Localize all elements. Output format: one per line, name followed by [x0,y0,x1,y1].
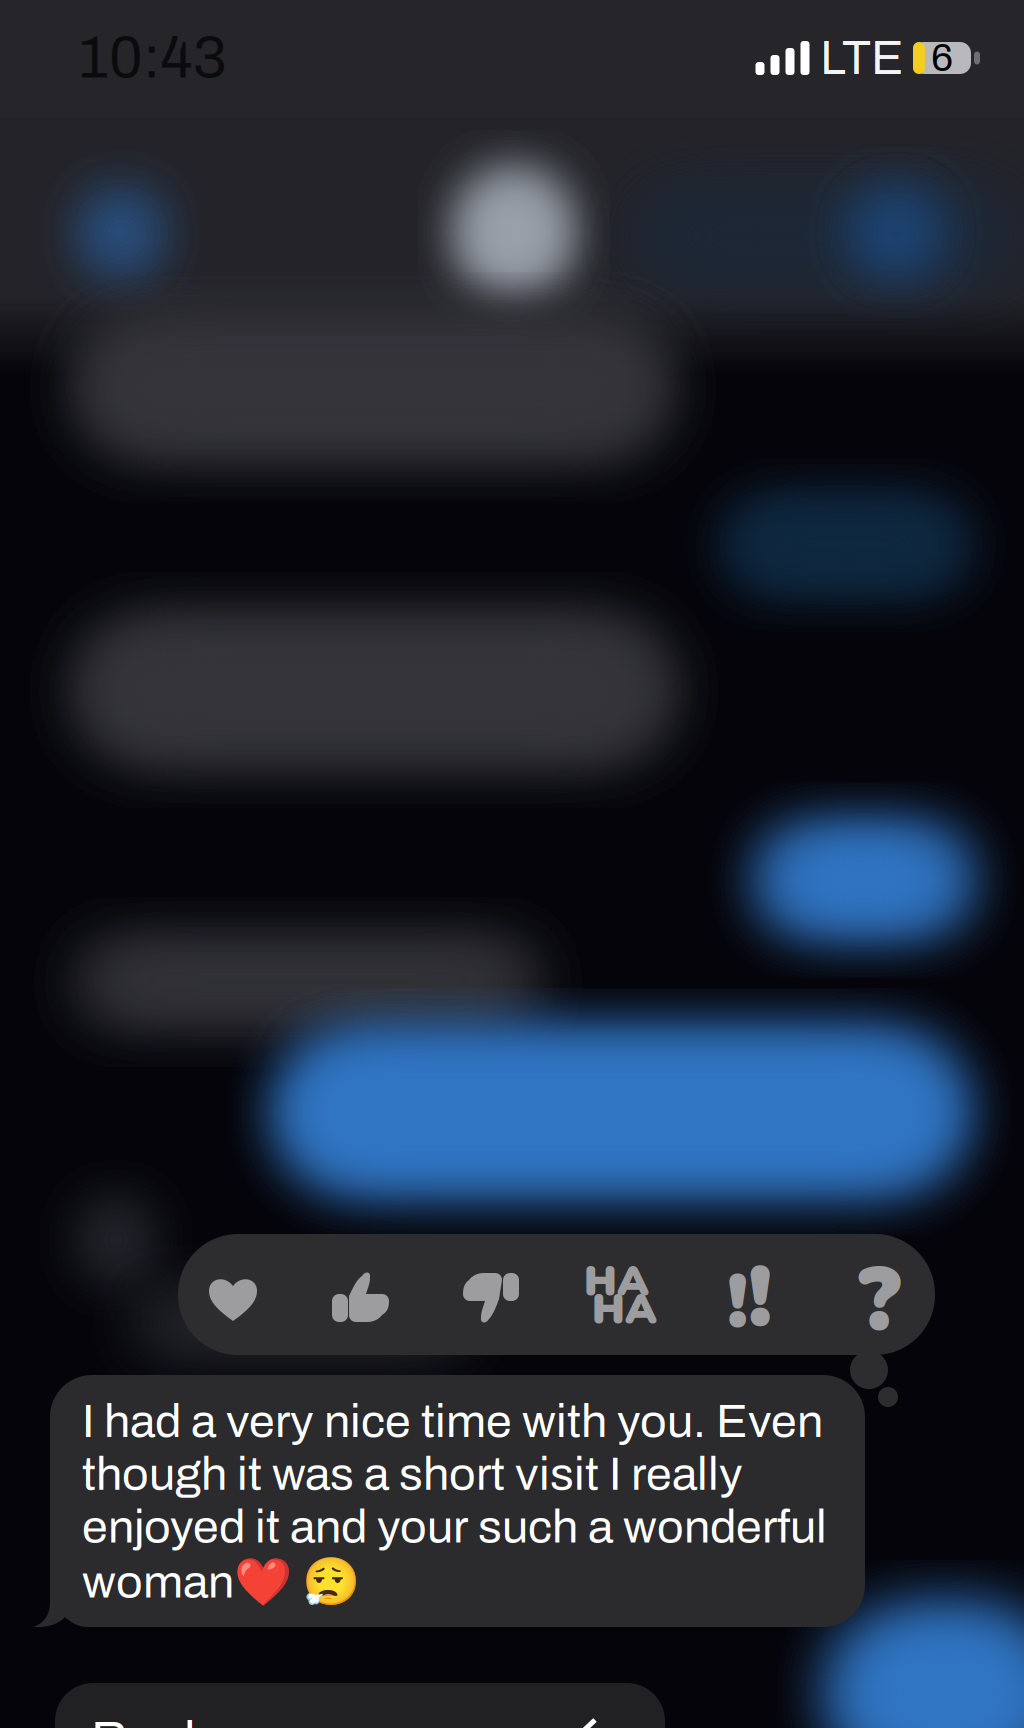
button[interactable]: Like [301,1235,421,1356]
staticText: LTE [820,32,903,84]
button[interactable]: Dislike [431,1238,551,1359]
staticText: HA [592,1281,657,1338]
button[interactable]: Question mark [819,1240,939,1361]
staticText: ? [857,1241,900,1361]
staticText: HA [584,1253,649,1310]
button[interactable]: Reply [55,1683,665,1728]
staticText: ! [748,1240,772,1356]
staticText: 6 [931,37,953,79]
button[interactable]: Love [173,1237,293,1358]
staticText: Reply [91,1711,221,1728]
staticText: ! [727,1252,748,1354]
button[interactable]: Haha [559,1237,679,1358]
button[interactable]: Exclamation [688,1210,808,1331]
staticText: I had a very nice time with you. Even th… [82,1396,827,1609]
staticText: 10:43 [78,26,227,90]
